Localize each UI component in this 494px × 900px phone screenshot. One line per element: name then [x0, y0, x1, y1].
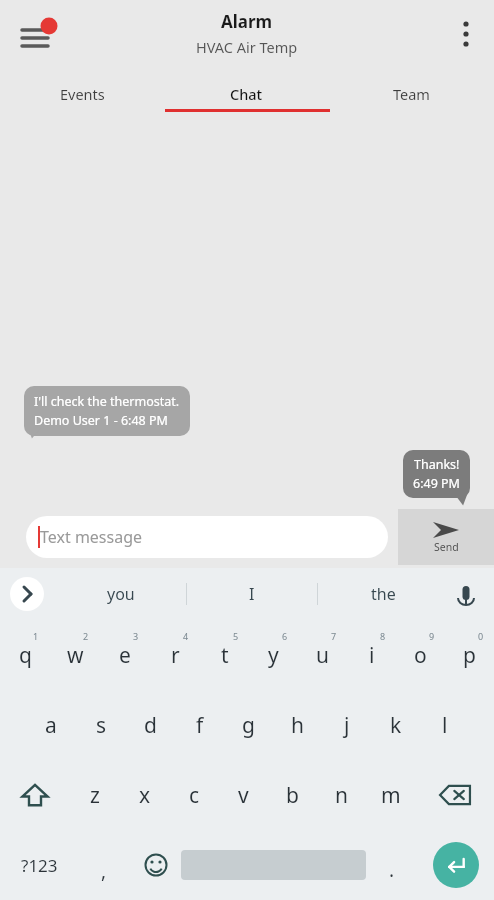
staticText: r	[171, 641, 180, 670]
button[interactable]: g	[224, 690, 273, 760]
staticText: 8	[380, 630, 386, 642]
staticText: 1	[33, 630, 39, 642]
button[interactable]: a	[26, 690, 76, 760]
staticText: n	[335, 781, 348, 810]
staticText: 9	[429, 630, 435, 642]
button[interactable]: j	[322, 690, 371, 760]
staticText: p	[463, 641, 476, 670]
button[interactable]: s	[76, 690, 126, 760]
staticText: 5	[233, 630, 239, 642]
button[interactable]: t	[200, 620, 249, 690]
button[interactable]: b	[268, 760, 317, 830]
button[interactable]: .	[366, 830, 417, 900]
staticText: l	[442, 711, 448, 740]
staticText: w	[67, 641, 84, 670]
staticText: ,	[101, 858, 107, 884]
staticText: a	[45, 711, 57, 740]
button[interactable]: o	[396, 620, 445, 690]
button[interactable]: Shift	[0, 760, 70, 830]
button[interactable]: Enter	[417, 830, 494, 900]
staticText: y	[268, 641, 279, 670]
button[interactable]: p	[445, 620, 494, 690]
button[interactable]: Backspace	[415, 760, 494, 830]
staticText: c	[189, 781, 200, 810]
button[interactable]: the	[318, 568, 448, 620]
button[interactable]: More options	[444, 8, 488, 52]
button[interactable]: Team	[329, 68, 494, 120]
button[interactable]: Space	[181, 830, 366, 900]
button[interactable]: d	[126, 690, 175, 760]
staticText: j	[344, 711, 350, 740]
button[interactable]: z	[70, 760, 120, 830]
staticText: you	[107, 583, 135, 605]
staticText: z	[90, 781, 100, 810]
staticText: Events	[60, 84, 105, 104]
button[interactable]: Menu	[12, 12, 60, 60]
staticText: f	[196, 711, 204, 740]
staticText: b	[286, 781, 299, 810]
staticText: u	[316, 641, 329, 670]
staticText: o	[414, 641, 427, 670]
button[interactable]: Send	[398, 509, 494, 565]
staticText: Text message	[40, 526, 143, 548]
staticText: HVAC Air Temp	[196, 37, 298, 57]
staticText: h	[291, 711, 304, 740]
button[interactable]: ,	[78, 830, 130, 900]
staticText: 4	[183, 630, 189, 642]
staticText: Chat	[230, 84, 263, 104]
button[interactable]: f	[175, 690, 224, 760]
button[interactable]: Emoji	[130, 830, 181, 900]
staticText: I	[249, 583, 255, 605]
button[interactable]: v	[219, 760, 268, 830]
staticText: 6	[282, 630, 288, 642]
staticText: .	[389, 857, 395, 883]
button[interactable]: Expand suggestions	[10, 577, 44, 611]
staticText: i	[369, 641, 375, 670]
staticText: Thanks!	[414, 456, 460, 473]
staticText: I'll check the thermostat.	[34, 393, 180, 410]
staticText: 7	[331, 630, 337, 642]
button[interactable]: u	[298, 620, 347, 690]
button[interactable]: h	[273, 690, 322, 760]
staticText: m	[381, 781, 401, 810]
button[interactable]: n	[317, 760, 366, 830]
staticText: x	[139, 781, 151, 810]
button[interactable]: w	[50, 620, 100, 690]
staticText: g	[242, 711, 255, 740]
button[interactable]: Voice input	[450, 578, 482, 610]
staticText: e	[119, 641, 131, 670]
staticText: Team	[393, 84, 430, 104]
button[interactable]: k	[371, 690, 420, 760]
button[interactable]: q	[0, 620, 50, 690]
button[interactable]: c	[170, 760, 219, 830]
staticText: v	[238, 781, 249, 810]
staticText: q	[19, 641, 32, 670]
staticText: 0	[478, 630, 484, 642]
button[interactable]: Chat	[164, 68, 329, 120]
staticText: d	[144, 711, 157, 740]
button[interactable]: m	[366, 760, 415, 830]
staticText: t	[221, 641, 229, 670]
button[interactable]: y	[249, 620, 298, 690]
staticText: 2	[83, 630, 89, 642]
button[interactable]: ?123	[0, 830, 78, 900]
button[interactable]: i	[347, 620, 396, 690]
staticText: s	[96, 711, 107, 740]
button[interactable]: Events	[0, 68, 164, 120]
button[interactable]: I	[187, 568, 317, 620]
staticText: Demo User 1 - 6:48 PM	[34, 412, 168, 429]
button[interactable]: you	[56, 568, 186, 620]
staticText: k	[390, 711, 402, 740]
staticText: Alarm	[221, 10, 273, 33]
staticText: the	[371, 583, 396, 605]
staticText: ?123	[21, 854, 58, 877]
button[interactable]: Text message	[26, 516, 388, 558]
button[interactable]: e	[100, 620, 150, 690]
staticText: 3	[133, 630, 139, 642]
staticText: Send	[434, 540, 459, 554]
button[interactable]: x	[120, 760, 170, 830]
button[interactable]: l	[420, 690, 469, 760]
button[interactable]: r	[150, 620, 200, 690]
staticText: 6:49 PM	[413, 475, 460, 492]
